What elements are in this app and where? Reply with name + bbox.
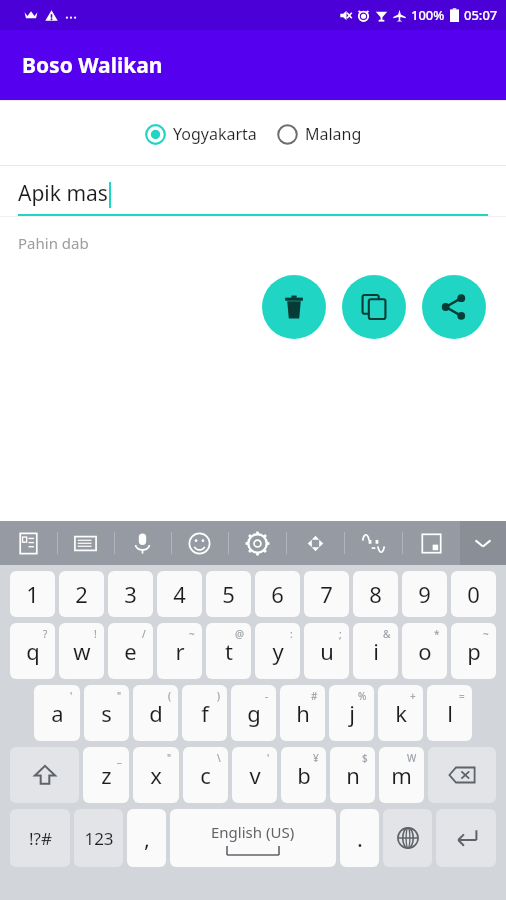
button[interactable]: enter	[436, 809, 496, 867]
staticText: Malang	[305, 123, 362, 145]
button[interactable]: e	[108, 623, 153, 679]
button[interactable]: Copy	[342, 275, 406, 339]
staticText: Boso Walikan	[22, 51, 163, 80]
button[interactable]: c	[183, 747, 228, 803]
staticText: !?#	[29, 827, 52, 850]
button[interactable]: x	[133, 747, 179, 803]
button[interactable]: m	[379, 747, 424, 803]
staticText: o	[418, 636, 432, 666]
staticText: m	[391, 760, 412, 790]
staticText: .	[357, 823, 363, 853]
button[interactable]: ,	[127, 809, 166, 867]
button[interactable]: gear	[228, 521, 286, 565]
button[interactable]: j	[329, 685, 374, 741]
button[interactable]: b	[281, 747, 326, 803]
staticText: w	[73, 636, 91, 666]
staticText: x	[150, 760, 162, 790]
button[interactable]: z	[83, 747, 129, 803]
button[interactable]: r	[157, 623, 202, 679]
button[interactable]: Yogyakarta	[143, 123, 259, 145]
button[interactable]: 2	[59, 571, 104, 617]
button[interactable]: n	[330, 747, 375, 803]
staticText: r	[175, 636, 185, 666]
button[interactable]: h	[280, 685, 325, 741]
button[interactable]: Malang	[275, 123, 364, 145]
staticText: n	[346, 760, 360, 790]
staticText: &	[383, 627, 391, 641]
button[interactable]: w	[59, 623, 104, 679]
button[interactable]: g	[231, 685, 276, 741]
staticText: Yogyakarta	[173, 123, 257, 145]
button[interactable]: mic	[114, 521, 171, 565]
button[interactable]: p	[451, 623, 496, 679]
staticText: ¥	[313, 751, 319, 765]
button[interactable]: 1	[10, 571, 55, 617]
staticText: "	[117, 689, 122, 703]
button[interactable]: 8	[353, 571, 398, 617]
button[interactable]: s	[84, 685, 129, 741]
button[interactable]: English (US)	[170, 809, 336, 867]
button[interactable]: q	[10, 623, 55, 679]
staticText: Apik mas	[18, 179, 108, 208]
button[interactable]: 9	[402, 571, 447, 617]
staticText: 9	[418, 579, 431, 609]
button[interactable]: 123	[74, 809, 123, 867]
staticText: c	[200, 760, 211, 790]
staticText: :	[290, 627, 293, 641]
button[interactable]: Share	[422, 275, 486, 339]
button[interactable]: 3	[108, 571, 153, 617]
staticText: -	[265, 689, 269, 703]
staticText: 05:07	[464, 6, 498, 24]
button[interactable]: smile	[171, 521, 228, 565]
button[interactable]: y	[255, 623, 300, 679]
staticText: 4	[173, 579, 186, 609]
button[interactable]: a	[34, 685, 80, 741]
staticText: *	[434, 627, 440, 641]
staticText: !	[94, 627, 97, 641]
button[interactable]: 7	[304, 571, 349, 617]
button[interactable]: f	[182, 685, 227, 741]
staticText: t	[225, 636, 233, 666]
staticText: ~	[189, 627, 195, 641]
button[interactable]: o	[402, 623, 447, 679]
button[interactable]: .	[340, 809, 379, 867]
button[interactable]: back	[428, 747, 496, 803]
staticText: '	[70, 689, 73, 703]
button[interactable]: 6	[255, 571, 300, 617]
button[interactable]: d	[133, 685, 178, 741]
button[interactable]: 4	[157, 571, 202, 617]
staticText: l	[447, 698, 453, 728]
staticText: 8	[369, 579, 382, 609]
staticText: 100%	[411, 6, 445, 24]
staticText: +	[410, 689, 416, 703]
staticText: y	[272, 636, 284, 666]
button[interactable]: !?#	[10, 809, 70, 867]
staticText: @	[235, 627, 244, 641]
button[interactable]: k	[378, 685, 423, 741]
button[interactable]: v	[232, 747, 277, 803]
button[interactable]: shift	[10, 747, 79, 803]
staticText: j	[349, 698, 355, 728]
button[interactable]: u	[304, 623, 349, 679]
button[interactable]: kaomoji	[344, 521, 402, 565]
button[interactable]: l	[427, 685, 472, 741]
button[interactable]: sticker	[402, 521, 460, 565]
button[interactable]: arrows	[286, 521, 344, 565]
button[interactable]: kbd	[57, 521, 114, 565]
staticText: =	[459, 689, 465, 703]
button[interactable]: Hide keyboard	[460, 521, 506, 565]
staticText: 6	[271, 579, 284, 609]
staticText: )	[217, 689, 220, 703]
button[interactable]: Delete	[262, 275, 326, 339]
staticText: h	[296, 698, 310, 728]
button[interactable]: clip	[0, 521, 57, 565]
staticText: 0	[467, 579, 480, 609]
button[interactable]: 5	[206, 571, 251, 617]
staticText: English (US)	[211, 822, 295, 842]
staticText: ;	[339, 627, 342, 641]
button[interactable]: globe	[383, 809, 432, 867]
button[interactable]: t	[206, 623, 251, 679]
button[interactable]: i	[353, 623, 398, 679]
button[interactable]: 0	[451, 571, 496, 617]
staticText: #	[311, 689, 318, 703]
